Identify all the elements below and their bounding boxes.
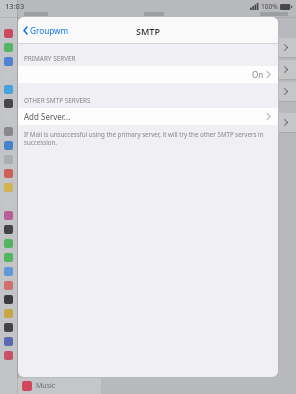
staticText: SMTP [136,25,160,37]
staticText: Music [36,381,56,391]
button[interactable]: Add Server... [18,108,278,125]
staticText: If Mail is unsuccessful using the primar… [24,130,266,146]
staticText: Groupwm [30,25,69,36]
staticText: 100% [261,2,278,11]
button[interactable]: Primary server, On [18,66,278,83]
staticText: PRIMARY SERVER [24,54,76,63]
staticText: OTHER SMTP SERVERS [24,96,91,105]
button[interactable]: Groupwm [18,17,76,44]
staticText: On [252,69,264,80]
staticText: Add Server... [24,111,71,122]
staticText: 13:03 [5,1,25,11]
